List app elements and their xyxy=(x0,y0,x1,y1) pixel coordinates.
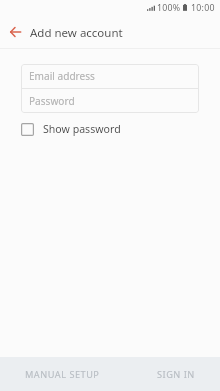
staticText: 10:00 xyxy=(191,2,215,14)
button[interactable]: Email address xyxy=(21,64,199,88)
button[interactable]: Password xyxy=(21,89,199,113)
button[interactable]: SIGN IN xyxy=(143,357,209,391)
staticText: 100% xyxy=(157,2,181,14)
button[interactable]: Navigate up xyxy=(0,18,30,48)
button[interactable]: Show password xyxy=(21,122,129,136)
staticText: Add new account xyxy=(30,25,123,41)
staticText: Show password xyxy=(43,122,121,136)
staticText: Email address xyxy=(29,69,95,83)
staticText: SIGN IN xyxy=(157,368,195,381)
staticText: MANUAL SETUP xyxy=(25,368,100,381)
button[interactable]: MANUAL SETUP xyxy=(11,357,114,391)
staticText: Password xyxy=(29,94,75,108)
